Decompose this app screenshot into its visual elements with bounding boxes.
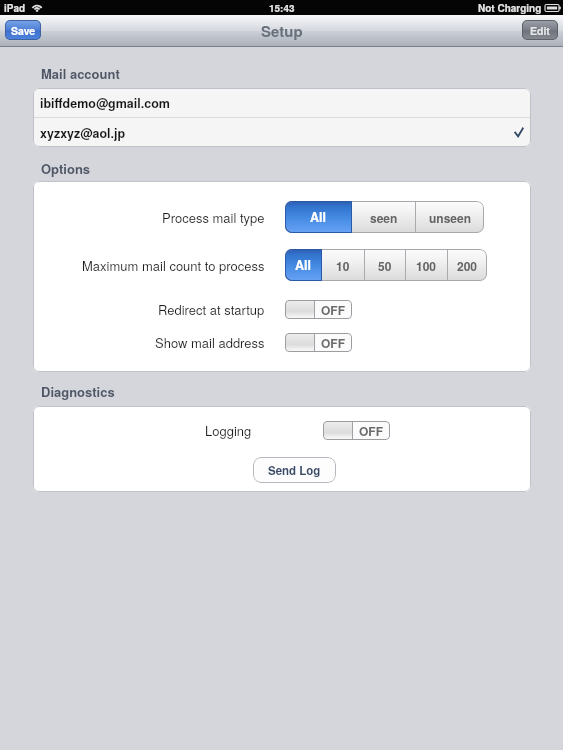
staticText: OFF [321,301,346,318]
staticText: OFF [359,422,384,439]
button[interactable]: Toggle, off [323,421,390,440]
button[interactable]: 100 [406,249,447,281]
staticText: Process mail type [162,208,265,227]
button[interactable]: ibiffdemo@gmail.com [33,88,531,117]
staticText: 100 [416,257,437,274]
staticText: ibiffdemo@gmail.com [40,94,170,112]
button[interactable]: All [285,249,321,281]
button[interactable]: Send Log [253,457,336,483]
button[interactable]: Toggle, off [285,333,352,352]
staticText: 50 [378,257,392,274]
staticText: Send Log [268,462,321,478]
staticText: Mail account [41,64,120,83]
staticText: Diagnostics [41,382,115,401]
staticText: Show mail address [155,333,265,352]
staticText: OFF [321,334,346,351]
staticText: Edit [530,23,550,38]
staticText: Logging [205,421,252,440]
button[interactable]: 200 [448,249,487,281]
staticText: Redirect at startup [158,300,265,319]
button[interactable]: All [285,201,351,233]
staticText: Setup [261,20,303,41]
button[interactable]: unseen [416,201,484,233]
staticText: Not Charging [478,1,542,15]
button[interactable]: xyzxyz@aol.jp [33,118,531,147]
staticText: 15:43 [269,1,295,15]
staticText: All [295,256,311,274]
staticText: xyzxyz@aol.jp [40,124,126,142]
button[interactable]: 50 [365,249,405,281]
staticText: 10 [336,257,350,274]
staticText: Save [11,23,36,38]
button[interactable]: 10 [322,249,364,281]
staticText: iPad [4,1,26,15]
staticText: Maximum mail count to process [82,256,265,275]
staticText: Options [41,159,91,178]
button[interactable]: Toggle, off [285,300,352,319]
button[interactable]: Save [5,20,41,40]
staticText: All [310,208,326,226]
staticText: unseen [429,209,472,226]
staticText: seen [370,209,398,226]
button[interactable]: Edit [522,20,558,40]
staticText: 200 [457,257,478,274]
button[interactable]: seen [352,201,415,233]
